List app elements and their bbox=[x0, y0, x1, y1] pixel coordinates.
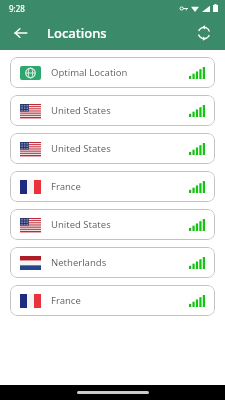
button[interactable]: United States bbox=[10, 133, 215, 164]
other: Signal strength bbox=[189, 181, 205, 193]
staticText: United States bbox=[51, 142, 189, 155]
button[interactable]: Optimal Location bbox=[10, 57, 215, 88]
other: Signal strength bbox=[189, 67, 205, 79]
other: Signal strength bbox=[189, 219, 205, 231]
other: Signal strength bbox=[189, 105, 205, 117]
button[interactable]: United States bbox=[10, 95, 215, 126]
other: Signal strength bbox=[189, 257, 205, 269]
button[interactable]: Netherlands bbox=[10, 247, 215, 278]
button[interactable]: France bbox=[10, 171, 215, 202]
staticText: Netherlands bbox=[51, 256, 189, 269]
other: Signal strength bbox=[189, 143, 205, 155]
staticText: Locations bbox=[47, 24, 107, 42]
button[interactable]: Refresh bbox=[191, 20, 217, 46]
button[interactable]: Back bbox=[8, 20, 34, 46]
staticText: United States bbox=[51, 104, 189, 117]
other: Signal strength bbox=[189, 295, 205, 307]
staticText: France bbox=[51, 180, 189, 193]
button[interactable]: United States bbox=[10, 209, 215, 240]
button[interactable]: France bbox=[10, 285, 215, 316]
staticText: Optimal Location bbox=[51, 66, 189, 79]
staticText: France bbox=[51, 294, 189, 307]
staticText: 9:28 bbox=[9, 3, 25, 14]
staticText: United States bbox=[51, 218, 189, 231]
